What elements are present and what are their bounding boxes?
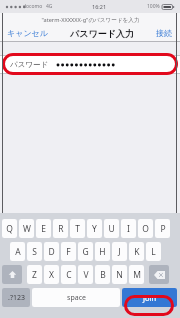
staticText: G xyxy=(82,246,89,258)
staticText: P xyxy=(160,223,166,235)
button[interactable]: キャンセル xyxy=(7,28,48,38)
button[interactable]: T xyxy=(70,219,85,238)
button[interactable]: 接続 xyxy=(156,28,172,38)
button[interactable]: P xyxy=(155,219,170,238)
staticText: Join xyxy=(143,293,157,303)
button[interactable]: Q xyxy=(2,219,17,238)
button[interactable]: O xyxy=(138,219,153,238)
staticText: H xyxy=(99,246,106,258)
staticText: 100% xyxy=(147,3,160,10)
button[interactable]: パスワード xyxy=(0,55,180,73)
button[interactable]: J xyxy=(112,242,127,261)
staticText: E xyxy=(41,223,46,235)
button[interactable]: .?123 xyxy=(2,288,30,307)
button[interactable]: U xyxy=(104,219,119,238)
staticText: Y xyxy=(92,223,97,235)
staticText: V xyxy=(83,269,89,281)
staticText: T xyxy=(75,223,80,235)
button[interactable]: space xyxy=(32,288,120,307)
staticText: O xyxy=(142,223,149,235)
staticText: L xyxy=(151,246,156,258)
button[interactable]: B xyxy=(95,265,110,284)
staticText: Z xyxy=(32,269,37,281)
button[interactable]: D xyxy=(44,242,59,261)
staticText: B xyxy=(100,269,106,281)
staticText: .?123 xyxy=(8,293,25,303)
button[interactable]: H xyxy=(95,242,110,261)
staticText: space xyxy=(67,293,86,303)
button[interactable]: F xyxy=(61,242,76,261)
staticText: J xyxy=(118,246,121,258)
staticText: "aterm-XXXXXX-g"のパスワードを入力 xyxy=(41,16,140,24)
staticText: I xyxy=(127,223,130,235)
button[interactable]: Z xyxy=(27,265,42,284)
staticText: C xyxy=(66,269,72,281)
staticText: M xyxy=(133,269,141,281)
button[interactable]: W xyxy=(19,219,34,238)
button[interactable]: V xyxy=(78,265,93,284)
button[interactable]: M xyxy=(129,265,144,284)
button[interactable]: Shift xyxy=(2,265,22,284)
staticText: A xyxy=(15,246,21,258)
button[interactable]: X xyxy=(44,265,59,284)
button[interactable]: N xyxy=(112,265,127,284)
staticText: R xyxy=(58,223,64,235)
button[interactable]: I xyxy=(121,219,136,238)
staticText: K xyxy=(134,246,140,258)
button[interactable]: Backspace xyxy=(149,265,169,284)
button[interactable]: E xyxy=(36,219,51,238)
staticText: docomo xyxy=(23,3,43,10)
staticText: S xyxy=(32,246,37,258)
button[interactable]: L xyxy=(146,242,161,261)
staticText: パスワード入力 xyxy=(70,28,134,39)
staticText: キャンセル xyxy=(7,28,48,38)
staticText: U xyxy=(108,223,115,235)
button[interactable]: A xyxy=(10,242,25,261)
button[interactable]: R xyxy=(53,219,68,238)
staticText: 4G xyxy=(46,3,53,10)
staticText: Q xyxy=(6,223,13,235)
staticText: N xyxy=(116,269,123,281)
staticText: 16:21 xyxy=(92,3,107,10)
button[interactable]: Join xyxy=(122,288,177,307)
button[interactable]: Y xyxy=(87,219,102,238)
staticText: X xyxy=(49,269,54,281)
button[interactable]: C xyxy=(61,265,76,284)
staticText: F xyxy=(66,246,71,258)
button[interactable]: G xyxy=(78,242,93,261)
staticText: パスワード xyxy=(10,60,49,69)
button[interactable]: S xyxy=(27,242,42,261)
button[interactable]: K xyxy=(129,242,144,261)
staticText: W xyxy=(23,223,31,235)
staticText: D xyxy=(48,246,55,258)
staticText: 接続 xyxy=(156,28,172,38)
